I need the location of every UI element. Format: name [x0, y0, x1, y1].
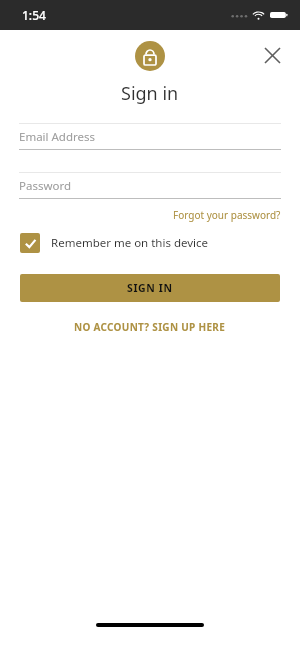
button[interactable]: Email Address: [19, 124, 281, 149]
staticText: Remember me on this device: [51, 235, 209, 251]
button[interactable]: NO ACCOUNT? SIGN UP HERE: [70, 316, 230, 338]
staticText: NO ACCOUNT? SIGN UP HERE: [74, 320, 226, 334]
button[interactable]: SIGN IN: [20, 274, 280, 302]
button[interactable]: Password: [19, 173, 281, 198]
button[interactable]: Remember me on this device: [20, 233, 280, 253]
staticText: Forgot your password?: [173, 208, 281, 222]
staticText: 1:54: [22, 7, 46, 23]
staticText: SIGN IN: [127, 281, 173, 295]
staticText: Email Address: [19, 129, 96, 145]
staticText: Password: [19, 178, 72, 194]
button[interactable]: Forgot your password?: [173, 208, 281, 222]
staticText: Sign in: [121, 81, 179, 106]
button[interactable]: Close: [254, 37, 290, 73]
